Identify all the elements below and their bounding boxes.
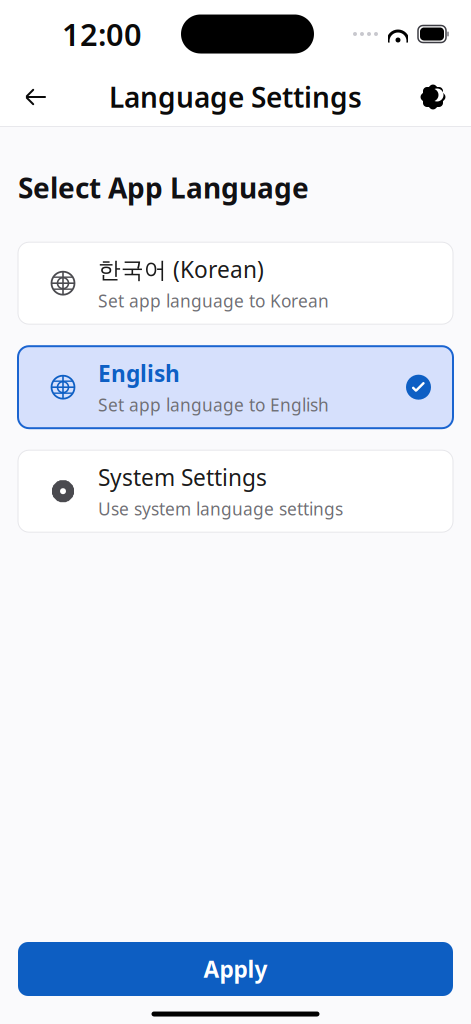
staticText: Set app language to Korean [98,289,329,312]
staticText: Use system language settings [98,497,343,520]
button[interactable]: Apply [18,942,453,996]
staticText: English [98,358,180,388]
staticText: Apply [203,954,267,984]
button[interactable]: English [18,346,453,428]
staticText: 한국어 (Korean) [98,254,264,284]
button[interactable]: System Settings [18,450,453,532]
staticText: Language Settings [109,78,362,116]
button[interactable]: Back [12,73,60,121]
button[interactable]: Toggle dark mode [409,73,457,121]
button[interactable]: 한국어 (Korean) [18,242,453,324]
staticText: 12:00 [62,14,142,54]
staticText: System Settings [98,462,267,492]
staticText: Set app language to English [98,393,329,416]
staticText: Select App Language [18,169,309,206]
